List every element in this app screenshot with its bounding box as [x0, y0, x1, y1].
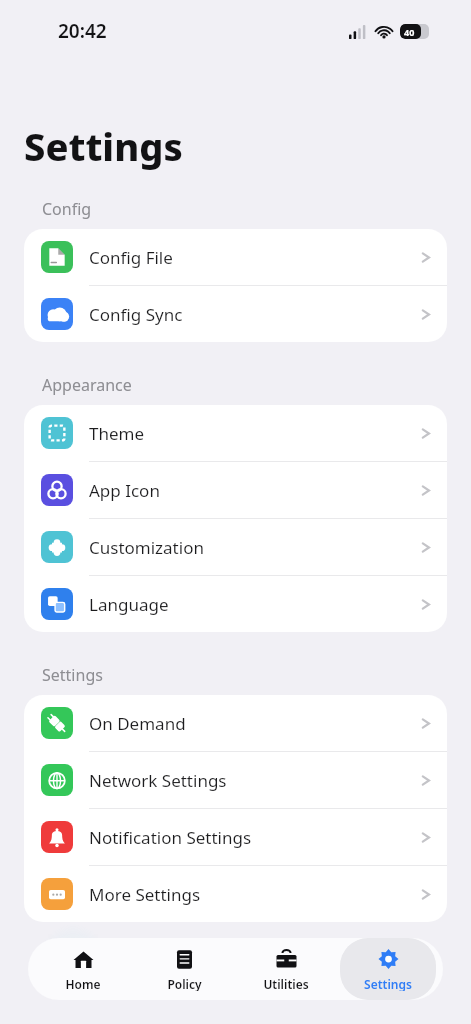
- button[interactable]: App Icon: [24, 462, 447, 518]
- staticText: App Icon: [89, 479, 421, 502]
- staticText: Settings: [364, 976, 412, 991]
- staticText: 40: [404, 26, 415, 38]
- button[interactable]: Network Settings: [24, 752, 447, 808]
- button[interactable]: Config Sync: [24, 286, 447, 342]
- staticText: On Demand: [89, 712, 421, 735]
- staticText: Policy: [167, 976, 202, 991]
- staticText: Theme: [89, 422, 421, 445]
- button[interactable]: Notification Settings: [24, 809, 447, 865]
- staticText: Language: [89, 593, 421, 616]
- button[interactable]: Policy: [136, 938, 232, 1000]
- staticText: Notification Settings: [89, 826, 421, 849]
- button[interactable]: Theme: [24, 405, 447, 461]
- staticText: Config File: [89, 246, 421, 269]
- staticText: Network Settings: [89, 769, 421, 792]
- staticText: Settings: [42, 664, 103, 686]
- staticText: Config: [42, 198, 92, 220]
- button[interactable]: Home: [35, 938, 130, 1000]
- staticText: Config Sync: [89, 303, 421, 326]
- staticText: Customization: [89, 536, 421, 559]
- staticText: More Settings: [89, 883, 421, 906]
- staticText: Settings: [24, 120, 183, 172]
- button[interactable]: Settings: [340, 938, 436, 1000]
- staticText: About: [42, 950, 88, 972]
- staticText: Home: [65, 976, 101, 991]
- button[interactable]: Language: [24, 576, 447, 632]
- staticText: Utilities: [263, 976, 309, 991]
- staticText: 20:42: [58, 18, 107, 44]
- staticText: Appearance: [42, 374, 132, 396]
- button[interactable]: On Demand: [24, 695, 447, 751]
- button[interactable]: Config File: [24, 229, 447, 285]
- button[interactable]: More Settings: [24, 866, 447, 922]
- button[interactable]: Customization: [24, 519, 447, 575]
- button[interactable]: Utilities: [238, 938, 334, 1000]
